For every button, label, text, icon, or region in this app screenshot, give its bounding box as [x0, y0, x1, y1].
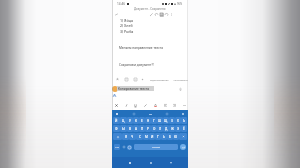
staticText: Р	[147, 127, 149, 131]
button[interactable]: С	[136, 133, 143, 140]
button[interactable]: Л	[157, 125, 163, 132]
button[interactable]: Р	[145, 125, 151, 132]
button[interactable]: Share	[133, 77, 138, 82]
button[interactable]: О	[151, 125, 157, 132]
staticText: Ы	[122, 127, 125, 131]
button[interactable]: М	[143, 133, 149, 140]
staticText: Л	[159, 127, 162, 131]
button[interactable]: Backspace	[179, 133, 187, 140]
button[interactable]: П	[139, 125, 145, 132]
button[interactable]: Undo	[154, 12, 159, 17]
staticText: ?123	[115, 146, 120, 149]
staticText: Ч	[131, 135, 134, 139]
button[interactable]: Ц	[120, 117, 127, 124]
staticText: М	[145, 135, 148, 139]
staticText: К	[135, 119, 137, 123]
button[interactable]: Redo	[164, 12, 169, 17]
button[interactable]: Ч	[129, 133, 136, 140]
staticText: Щ	[164, 119, 168, 123]
button[interactable]: Emoji	[122, 145, 126, 149]
button[interactable]: Clipboard	[148, 112, 152, 116]
button[interactable]: More format	[182, 103, 187, 108]
button[interactable]: Keyboard	[159, 12, 164, 17]
button[interactable]: Редактирование	[150, 79, 169, 82]
button[interactable]: Back	[114, 12, 119, 17]
button[interactable]: Э	[175, 125, 181, 132]
button[interactable]: Apps	[115, 112, 119, 116]
button[interactable]: More options	[169, 12, 174, 17]
button[interactable]: И	[149, 133, 155, 140]
staticText: Н	[147, 119, 150, 123]
button[interactable]: Person	[115, 77, 120, 82]
button[interactable]: Н	[145, 117, 151, 124]
button[interactable]: Ф	[113, 125, 120, 132]
staticText: 3) Рыба	[120, 29, 134, 34]
button[interactable]: Settings	[181, 112, 185, 116]
button[interactable]: Ю	[173, 133, 179, 140]
staticText: У	[129, 119, 131, 123]
staticText: 1) Яйца	[120, 18, 134, 23]
button[interactable]: Ь	[161, 133, 167, 140]
button[interactable]: Cut	[114, 103, 119, 108]
button[interactable]: Comment	[124, 77, 129, 82]
button[interactable]: Recents	[167, 159, 174, 166]
button[interactable]: Stickers	[132, 112, 136, 116]
button[interactable]: Shift	[113, 133, 122, 140]
button[interactable]: Space	[134, 144, 178, 150]
button[interactable]: З	[169, 117, 175, 124]
button[interactable]: Translate	[165, 112, 169, 116]
button[interactable]: Underline	[133, 103, 138, 108]
staticText: Документ - Сохранено	[134, 7, 166, 11]
staticText: Г	[153, 119, 155, 123]
button[interactable]: Italic	[124, 103, 129, 108]
button[interactable]: Draw	[149, 12, 154, 17]
staticText: Й	[115, 119, 118, 123]
staticText: Б	[169, 135, 171, 139]
button[interactable]: Highlight	[143, 103, 148, 108]
button[interactable]: Align left	[163, 103, 168, 108]
button[interactable]: Voice input	[177, 86, 183, 92]
button[interactable]: К	[133, 117, 139, 124]
button[interactable]: Keyboard settings	[127, 145, 132, 150]
button[interactable]: Б	[167, 133, 173, 140]
button[interactable]: Text colour	[153, 103, 158, 108]
button[interactable]: У	[127, 117, 133, 124]
button[interactable]: Ё	[181, 125, 187, 132]
button[interactable]: Ш	[157, 117, 163, 124]
staticText: Я	[125, 135, 127, 139]
button[interactable]: Enter	[180, 144, 186, 150]
staticText: Е	[141, 119, 143, 123]
staticText: З	[171, 119, 173, 123]
staticText: Т	[157, 135, 159, 139]
staticText: Д	[165, 127, 168, 131]
staticText: Э	[177, 127, 180, 131]
button[interactable]: Х	[175, 117, 181, 124]
staticText: Ш	[158, 119, 162, 123]
button[interactable]: Т	[155, 133, 161, 140]
button[interactable]: Инструменты	[173, 79, 189, 82]
button[interactable]: Home	[147, 159, 154, 166]
staticText: Ж	[171, 127, 174, 131]
staticText: Сохраняем документ?!	[119, 63, 154, 67]
button[interactable]: Align right	[172, 103, 177, 108]
button[interactable]: Ы	[120, 125, 127, 132]
staticText: Меняем направление текста	[119, 46, 164, 50]
button[interactable]: В	[127, 125, 133, 132]
staticText: Ц	[122, 119, 125, 123]
button[interactable]: Е	[139, 117, 145, 124]
button[interactable]: Back	[126, 159, 133, 166]
button[interactable]: Д	[163, 125, 169, 132]
staticText: А	[135, 127, 137, 131]
staticText: Ь	[163, 135, 165, 139]
staticText: И	[151, 135, 154, 139]
button[interactable]: Й	[113, 117, 120, 124]
button[interactable]: Щ	[163, 117, 169, 124]
button[interactable]: ?123	[114, 144, 120, 150]
button[interactable]: Ъ	[181, 117, 187, 124]
button[interactable]: Ж	[169, 125, 175, 132]
button[interactable]: Add	[140, 77, 145, 82]
staticText: Ъ	[183, 119, 186, 123]
button[interactable]: А	[133, 125, 139, 132]
button[interactable]: Г	[151, 117, 157, 124]
button[interactable]: Я	[122, 133, 129, 140]
